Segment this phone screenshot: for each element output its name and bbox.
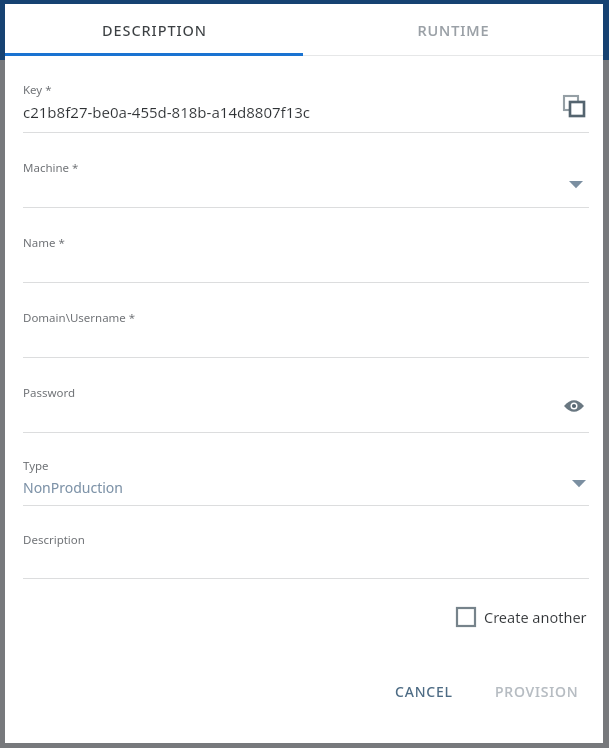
staticText: Type <box>23 458 49 474</box>
button[interactable]: CANCEL <box>385 675 463 708</box>
button[interactable]: Show password <box>557 389 591 423</box>
staticText: Name * <box>23 235 65 251</box>
staticText: Password <box>23 385 76 401</box>
button[interactable]: Create another <box>455 603 589 631</box>
button[interactable]: Copy key <box>557 89 591 123</box>
staticText: DESCRIPTION <box>102 20 207 40</box>
staticText: c21b8f27-be0a-455d-818b-a14d8807f13c <box>23 102 311 122</box>
staticText: Description <box>23 532 85 548</box>
staticText: PROVISION <box>495 682 579 701</box>
staticText: Domain\Username * <box>23 310 136 326</box>
button[interactable]: RUNTIME <box>303 4 603 56</box>
button[interactable]: Select machine <box>559 167 593 201</box>
staticText: RUNTIME <box>417 20 490 40</box>
button[interactable]: Select type <box>562 466 596 500</box>
staticText: Create another <box>484 607 587 627</box>
button[interactable]: PROVISION <box>485 675 589 708</box>
staticText: Key * <box>23 82 52 98</box>
button[interactable]: DESCRIPTION <box>5 4 303 56</box>
staticText: Machine * <box>23 160 79 176</box>
staticText: NonProduction <box>23 478 123 497</box>
staticText: CANCEL <box>395 682 453 701</box>
